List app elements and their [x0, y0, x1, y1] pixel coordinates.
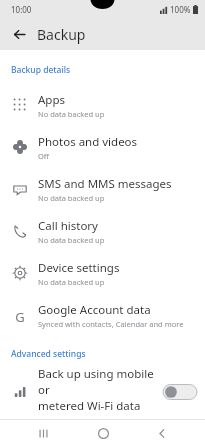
- staticText: SMS and MMS messages: [38, 176, 172, 192]
- staticText: 10:00: [11, 4, 32, 15]
- staticText: 100%: [170, 4, 191, 15]
- staticText: No data backed up: [38, 193, 105, 203]
- staticText: Device settings: [38, 260, 120, 276]
- button[interactable]: Recent apps: [26, 420, 60, 446]
- button[interactable]: Apps: [0, 84, 205, 126]
- staticText: No data backed up: [38, 277, 105, 287]
- staticText: No data backed up: [38, 235, 105, 245]
- button[interactable]: Back up using mobile or: [0, 366, 205, 418]
- staticText: Photos and videos: [38, 134, 138, 150]
- staticText: Advanced settings: [11, 348, 86, 360]
- staticText: Off: [38, 151, 50, 161]
- staticText: Google Account data: [38, 302, 151, 318]
- staticText: Synced with contacts, Calendar and more: [38, 319, 184, 329]
- staticText: Back up using mobile or: [38, 366, 159, 398]
- button[interactable]: Device settings: [0, 252, 205, 294]
- staticText: No data backed up: [38, 109, 105, 119]
- button[interactable]: Back: [145, 420, 179, 446]
- staticText: Backup: [37, 25, 86, 44]
- button[interactable]: Call history: [0, 210, 205, 252]
- staticText: G: [15, 308, 25, 322]
- staticText: metered Wi-Fi data: [38, 398, 141, 414]
- staticText: Backup details: [11, 64, 71, 76]
- button[interactable]: Back: [6, 21, 32, 47]
- button[interactable]: SMS and MMS messages: [0, 168, 205, 210]
- button[interactable]: Home: [86, 420, 120, 446]
- button[interactable]: Back up using mobile or metered Wi-Fi da…: [163, 382, 197, 402]
- staticText: Apps: [38, 92, 66, 108]
- staticText: Call history: [38, 218, 98, 234]
- button[interactable]: G: [0, 294, 205, 336]
- button[interactable]: Photos and videos: [0, 126, 205, 168]
